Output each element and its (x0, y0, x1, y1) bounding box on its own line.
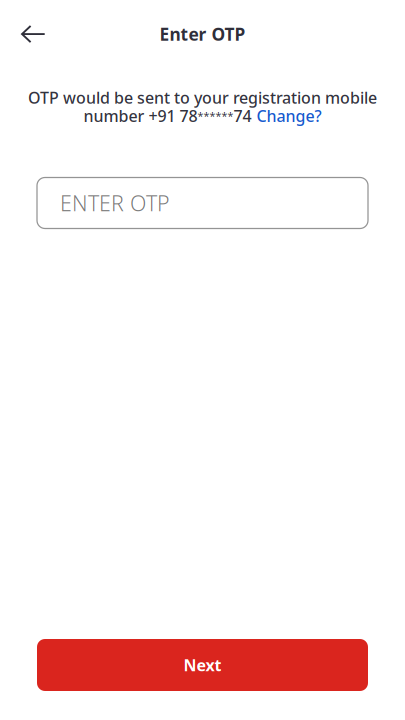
staticText: number +91 78******74 (83, 105, 251, 126)
button[interactable]: Change? (256, 105, 321, 126)
button[interactable]: Next (37, 639, 368, 691)
staticText: ENTER OTP (60, 189, 170, 217)
staticText: Change? (256, 105, 321, 126)
button[interactable]: ENTER OTP (37, 177, 368, 228)
staticText: OTP would be sent to your registration m… (28, 87, 377, 108)
staticText: Next (183, 654, 221, 676)
staticText: Enter OTP (159, 22, 245, 45)
button[interactable]: Back (0, 12, 61, 56)
